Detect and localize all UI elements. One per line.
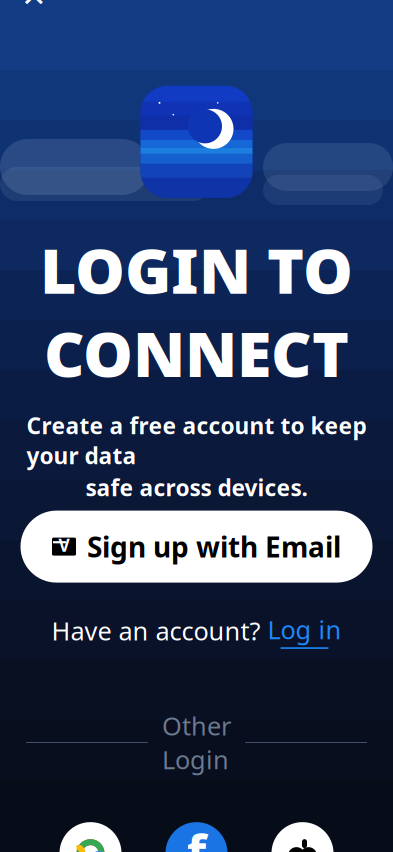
staticText: Sign up with Email	[87, 528, 341, 565]
staticText: ✕	[21, 0, 47, 13]
button[interactable]: ✉	[20, 511, 372, 583]
button[interactable]: Sign in with Google	[59, 822, 121, 852]
staticText: Create a free account to keep your data	[26, 410, 366, 470]
staticText: Other Login	[162, 709, 231, 776]
staticText: safe across devices.	[85, 472, 307, 503]
staticText: LOGIN TO	[40, 228, 353, 311]
staticText: CONNECT	[44, 311, 349, 394]
staticText: Log in	[267, 613, 341, 646]
button[interactable]: Log in	[267, 613, 341, 649]
staticText: f	[186, 818, 206, 852]
button[interactable]: Close	[12, 0, 56, 18]
staticText: Have an account?	[51, 614, 260, 647]
button[interactable]: Sign in with Facebook	[165, 822, 227, 852]
staticText: ✉	[55, 534, 73, 559]
button[interactable]: Sign in with Apple	[271, 822, 333, 852]
staticText: V	[58, 534, 69, 557]
